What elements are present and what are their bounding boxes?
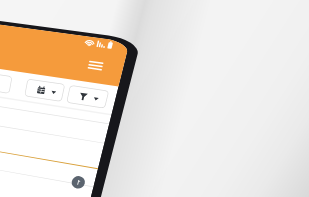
- button[interactable]: [0, 0, 309, 197]
